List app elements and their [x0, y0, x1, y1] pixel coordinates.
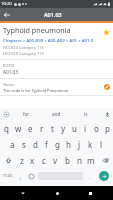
- button[interactable]: o: [91, 120, 102, 136]
- button[interactable]: e: [24, 120, 36, 136]
- button[interactable]: Emoji: [26, 168, 37, 184]
- staticText: o: [94, 123, 99, 134]
- button[interactable]: is: [71, 108, 101, 120]
- button[interactable]: Edit note: [101, 81, 113, 93]
- button[interactable]: y: [58, 120, 69, 136]
- staticText: is: [84, 111, 88, 117]
- staticText: ,: [20, 173, 22, 180]
- staticText: c: [42, 155, 46, 166]
- staticText: i: [84, 123, 87, 134]
- staticText: Notes: [3, 82, 15, 87]
- staticText: A01.03: [3, 69, 18, 75]
- button[interactable]: x: [27, 152, 38, 168]
- staticText: u: [72, 123, 77, 134]
- button[interactable]: f: [41, 136, 52, 152]
- staticText: y: [61, 123, 66, 134]
- staticText: s: [22, 139, 26, 150]
- button[interactable]: a: [6, 136, 18, 152]
- button[interactable]: Home: [47, 186, 67, 200]
- staticText: A01.03: [44, 11, 62, 18]
- button[interactable]: Backspace: [97, 152, 113, 168]
- button[interactable]: Navigate up: [0, 8, 13, 21]
- button[interactable]: g: [52, 136, 63, 152]
- staticText: 10:20: [1, 1, 12, 7]
- staticText: Chapters > A00-B99 > A00-A09 > A01 > A01…: [3, 37, 94, 43]
- button[interactable]: Back: [13, 186, 33, 200]
- staticText: ?123: [3, 173, 13, 179]
- staticText: e: [28, 123, 33, 134]
- staticText: b: [65, 155, 70, 166]
- button[interactable]: r: [36, 120, 47, 136]
- staticText: m: [87, 155, 95, 166]
- staticText: HCCV28 Category 115: [3, 51, 44, 56]
- staticText: v: [53, 155, 58, 166]
- button[interactable]: Open features menu: [0, 108, 12, 120]
- staticText: This code is for Typhoid Pneumonia: [3, 88, 69, 93]
- staticText: r: [40, 123, 44, 134]
- staticText: Typhoid pneumonia: [3, 25, 71, 35]
- button[interactable]: t: [47, 120, 58, 136]
- button[interactable]: for: [12, 108, 41, 120]
- staticText: ICD10: [3, 63, 15, 68]
- button[interactable]: and: [41, 108, 71, 120]
- staticText: a: [10, 139, 15, 150]
- button[interactable]: Voice input: [101, 108, 113, 120]
- button[interactable]: z: [16, 152, 27, 168]
- staticText: for: [23, 111, 30, 117]
- button[interactable]: l: [96, 136, 107, 152]
- staticText: n: [77, 155, 82, 166]
- button[interactable]: w: [12, 120, 24, 136]
- staticText: .: [89, 173, 91, 180]
- staticText: l: [100, 139, 103, 150]
- staticText: h: [66, 139, 71, 150]
- button[interactable]: i: [80, 120, 91, 136]
- button[interactable]: Shift: [0, 152, 16, 168]
- staticText: and: [52, 111, 61, 117]
- staticText: z: [20, 155, 24, 166]
- button[interactable]: j: [74, 136, 85, 152]
- staticText: w: [15, 123, 22, 134]
- button[interactable]: h: [63, 136, 74, 152]
- staticText: q: [4, 123, 9, 134]
- button[interactable]: n: [73, 152, 85, 168]
- button[interactable]: k: [85, 136, 96, 152]
- staticText: x: [30, 155, 35, 166]
- staticText: f: [45, 139, 48, 150]
- button[interactable]: u: [69, 120, 80, 136]
- button[interactable]: q: [0, 120, 12, 136]
- button[interactable]: Favorite: [99, 25, 113, 39]
- button[interactable]: p: [102, 120, 113, 136]
- button[interactable]: s: [18, 136, 30, 152]
- button[interactable]: d: [30, 136, 41, 152]
- staticText: j: [78, 139, 81, 150]
- button[interactable]: Enter: [95, 168, 113, 184]
- button[interactable]: v: [49, 152, 61, 168]
- staticText: p: [105, 123, 110, 134]
- button[interactable]: m: [85, 152, 97, 168]
- button[interactable]: Comma: [15, 168, 26, 184]
- button[interactable]: ?123: [0, 168, 15, 184]
- staticText: k: [88, 139, 93, 150]
- button[interactable]: b: [61, 152, 73, 168]
- button[interactable]: Period: [84, 168, 95, 184]
- button[interactable]: c: [38, 152, 49, 168]
- staticText: g: [55, 139, 60, 150]
- staticText: t: [51, 123, 54, 134]
- button[interactable]: Recent apps: [80, 186, 100, 200]
- staticText: HCCV24 Category 115: [3, 45, 44, 50]
- staticText: d: [33, 139, 38, 150]
